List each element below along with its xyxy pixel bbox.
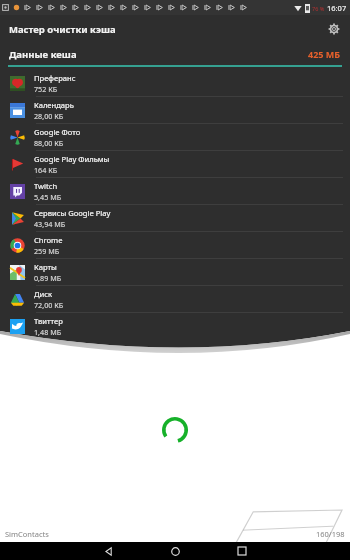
staticText: Преферанс [34, 73, 76, 83]
button[interactable]: Back [97, 542, 119, 560]
staticText: Твиттер [34, 316, 63, 326]
button[interactable]: Chrome [0, 232, 350, 258]
staticText: 16:07 [327, 3, 347, 13]
button[interactable]: Home [164, 542, 186, 560]
button[interactable]: Твиттер [0, 313, 350, 339]
button[interactable]: Сервисы Google Play [0, 205, 350, 231]
staticText: Twitch [34, 181, 58, 191]
button[interactable]: Календарь [0, 97, 350, 123]
staticText: 164 КБ [34, 165, 58, 175]
button[interactable]: Google Play Фильмы [0, 151, 350, 177]
staticText: Google Play Фильмы [34, 154, 110, 164]
button[interactable]: Recents [231, 542, 253, 560]
button[interactable]: Преферанс [0, 70, 350, 96]
staticText: 752 КБ [34, 84, 58, 94]
staticText: Мастер очистки кэша [9, 23, 116, 36]
staticText: 28,00 КБ [34, 111, 64, 121]
staticText: Календарь [34, 100, 74, 110]
staticText: 425 МБ [308, 48, 341, 60]
button[interactable]: Карты [0, 259, 350, 285]
staticText: 259 МБ [34, 246, 60, 256]
staticText: 1,48 МБ [34, 327, 62, 337]
staticText: 72,00 КБ [34, 300, 64, 310]
staticText: 5,45 МБ [34, 192, 62, 202]
button[interactable]: Twitch [0, 178, 350, 204]
staticText: SimContacts [5, 529, 49, 539]
staticText: 160/198 [316, 529, 345, 539]
button[interactable]: Диск [0, 286, 350, 312]
staticText: 43,94 МБ [34, 219, 66, 229]
staticText: 88,00 КБ [34, 138, 64, 148]
staticText: Данные кеша [9, 48, 77, 61]
staticText: Google Фото [34, 127, 81, 137]
staticText: Карты [34, 262, 57, 272]
staticText: 0,89 МБ [34, 273, 62, 283]
staticText: 76 % [312, 5, 325, 12]
button[interactable]: Settings [324, 19, 344, 39]
staticText: Сервисы Google Play [34, 208, 111, 218]
button[interactable]: Google Фото [0, 124, 350, 150]
staticText: Диск [34, 289, 53, 299]
staticText: Chrome [34, 235, 63, 245]
